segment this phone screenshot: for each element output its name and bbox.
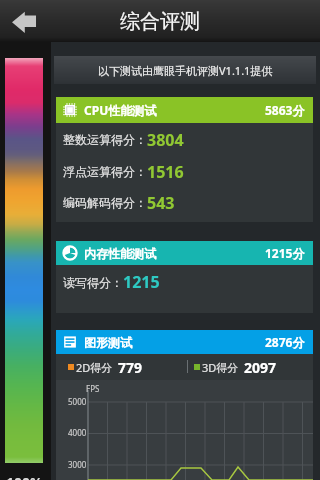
staticText: 3000 (68, 459, 87, 470)
staticText: 综合评测 (120, 9, 200, 34)
staticText: 浮点运算得分： (63, 164, 147, 179)
staticText: 2876分 (265, 334, 305, 350)
staticText: 以下测试由鹰眼手机评测V1.1.1提供 (98, 63, 273, 78)
staticText: 4000 (68, 427, 87, 438)
staticText: 图形测试 (84, 335, 132, 350)
staticText: 2097 (244, 358, 277, 377)
button[interactable]: 图形测试 (56, 330, 313, 354)
staticText: 1516 (147, 161, 184, 183)
staticText: 1215 (123, 271, 160, 293)
staticText: 编码解码得分： (63, 195, 147, 210)
staticText: 整数运算得分： (63, 132, 147, 147)
staticText: 5863分 (265, 102, 305, 118)
staticText: CPU性能测试 (84, 102, 157, 118)
button[interactable]: Back (8, 4, 42, 38)
button[interactable]: 内存性能测试 (56, 241, 313, 265)
staticText: 5000 (68, 396, 87, 407)
button[interactable]: CPU性能测试 (56, 97, 313, 123)
staticText: 3804 (147, 129, 184, 151)
staticText: 543 (147, 192, 175, 214)
staticText: 读写得分： (63, 275, 123, 290)
staticText: 2D得分 (76, 360, 113, 375)
staticText: 内存性能测试 (84, 246, 156, 261)
staticText: FPS (86, 383, 100, 394)
staticText: 3D得分 (202, 360, 239, 375)
staticText: 779 (118, 358, 143, 377)
staticText: 100% (6, 473, 43, 480)
staticText: 1215分 (265, 245, 305, 261)
